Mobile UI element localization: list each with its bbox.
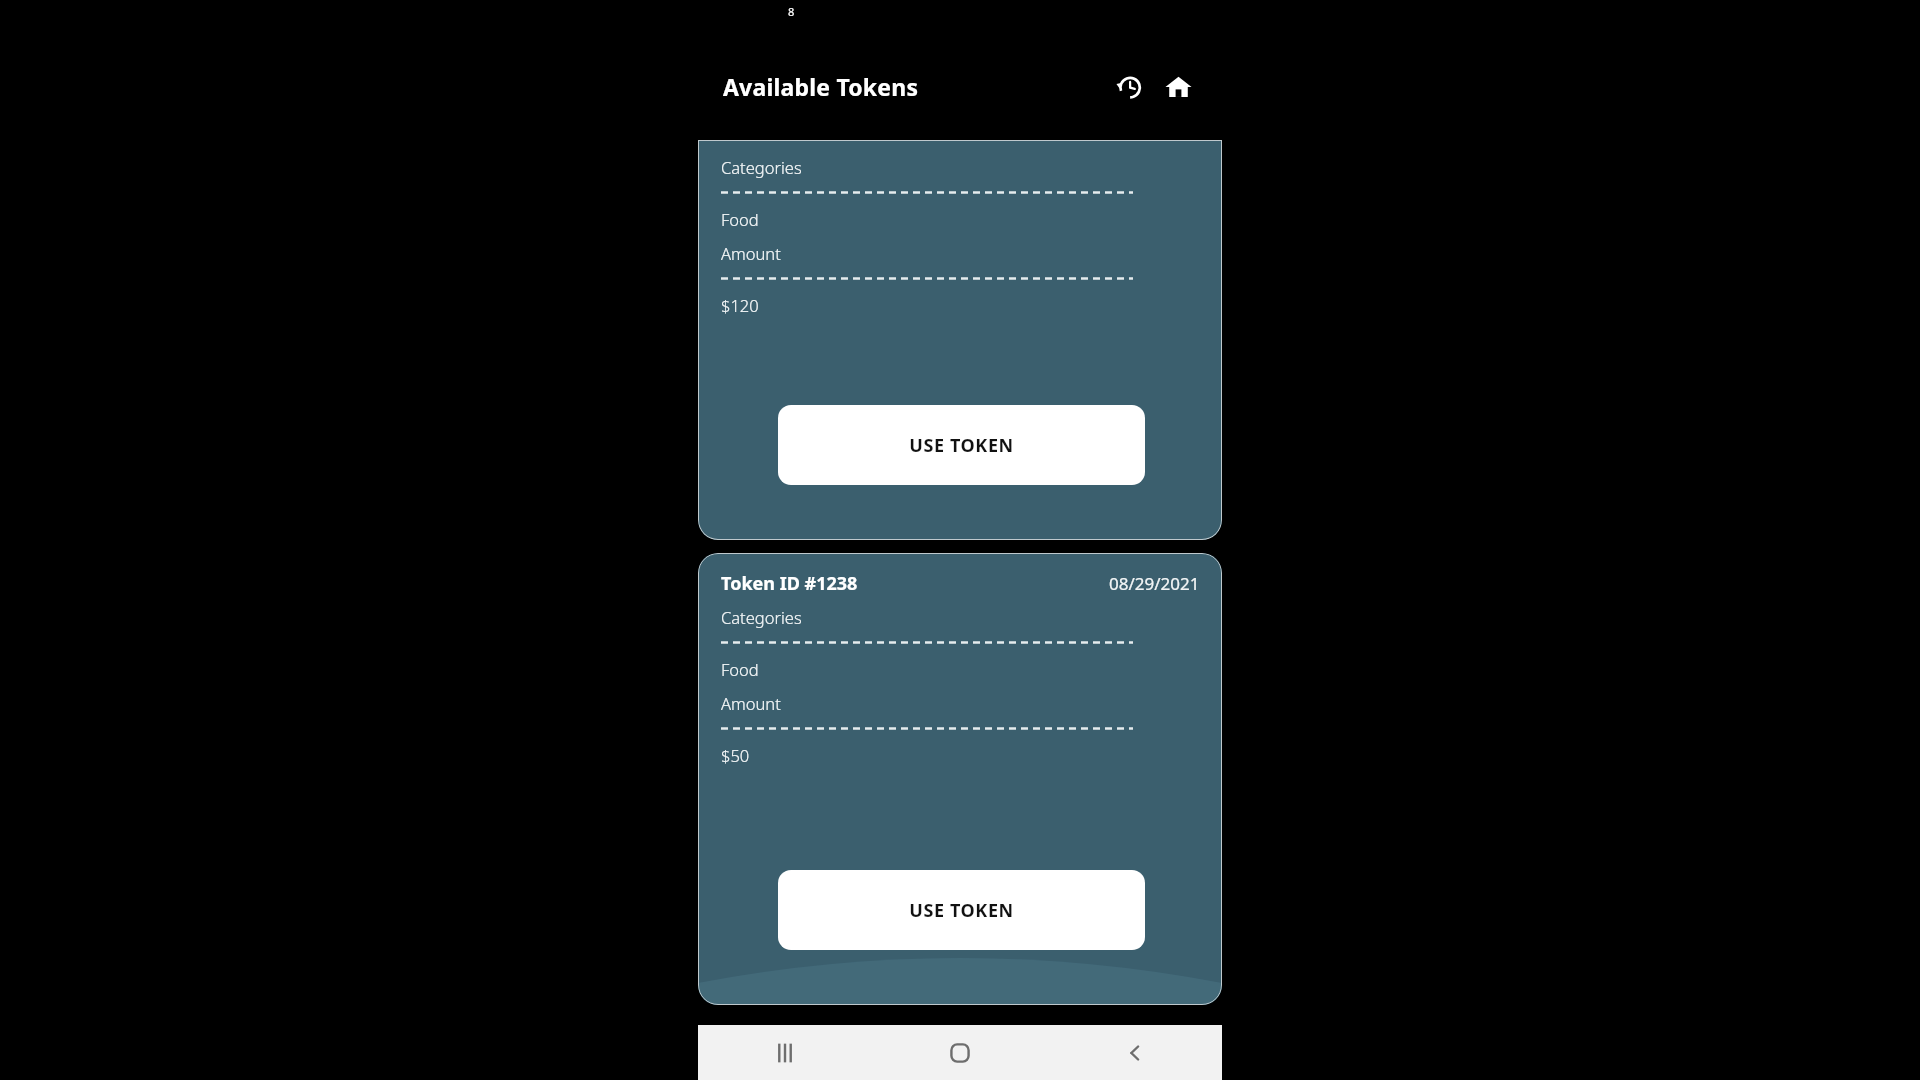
button[interactable]: Token ID #1238 — [698, 553, 1222, 1005]
button[interactable]: Back — [1047, 1025, 1222, 1080]
staticText: Available Tokens — [723, 71, 919, 102]
button[interactable]: USE TOKEN — [778, 405, 1145, 485]
staticText: Categories — [721, 156, 802, 178]
button[interactable]: Recent apps — [698, 1025, 872, 1080]
staticText: Categories — [721, 606, 802, 628]
staticText: 8 — [788, 4, 795, 19]
staticText: Food — [721, 208, 759, 230]
staticText: USE TOKEN — [909, 433, 1014, 458]
button[interactable]: Home — [1156, 64, 1200, 108]
staticText: Token ID #1238 — [721, 571, 858, 596]
staticText: 08/29/2021 — [1109, 572, 1200, 595]
button[interactable]: History — [1106, 64, 1150, 108]
staticText: Food — [721, 658, 759, 680]
staticText: $120 — [721, 294, 759, 316]
staticText: $50 — [721, 744, 750, 766]
button[interactable]: USE TOKEN — [778, 870, 1145, 950]
staticText: Amount — [721, 692, 781, 714]
staticText: USE TOKEN — [909, 898, 1014, 923]
button[interactable]: Categories — [698, 140, 1222, 540]
staticText: Amount — [721, 242, 781, 264]
button[interactable]: Home — [872, 1025, 1047, 1080]
